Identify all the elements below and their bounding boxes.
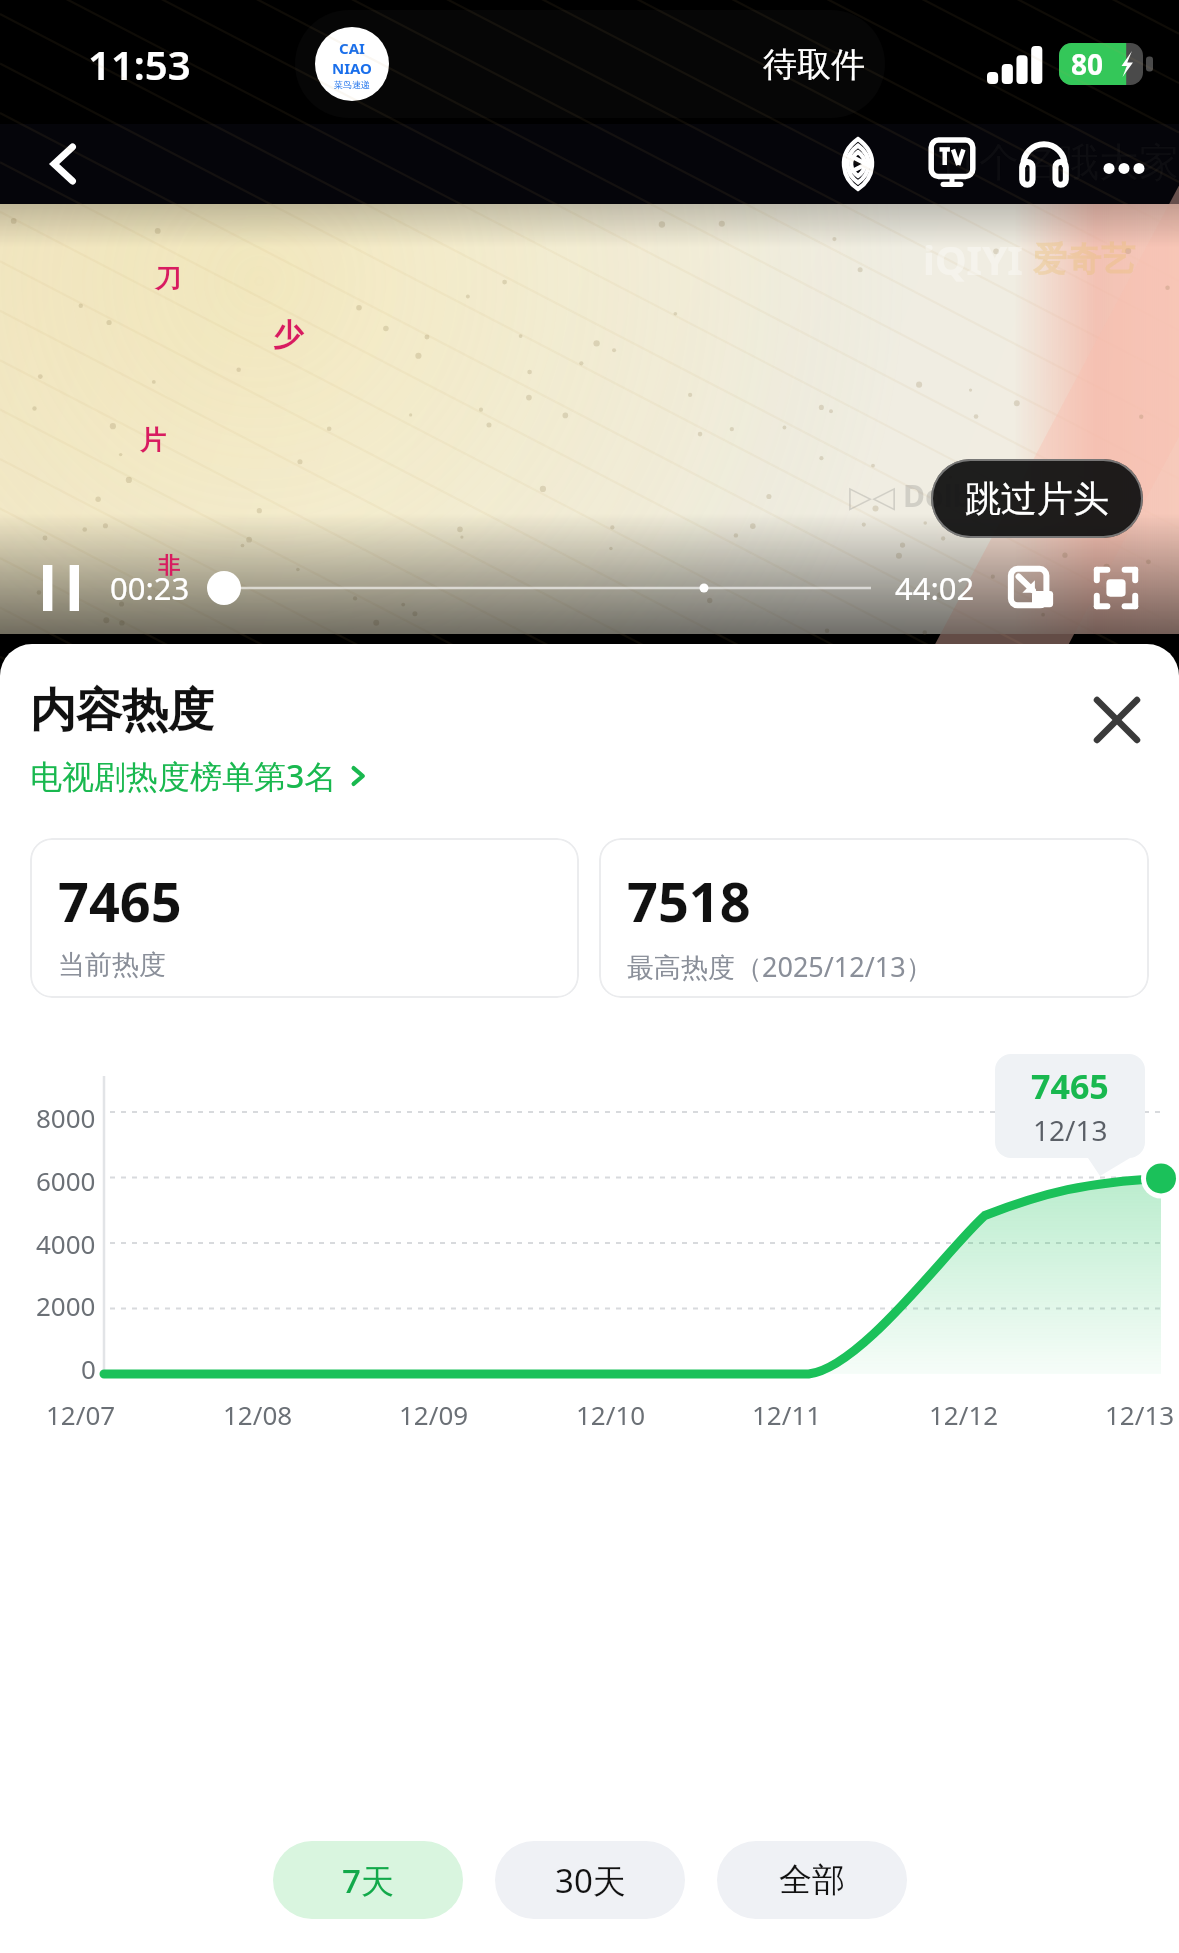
button[interactable]: Close — [1085, 688, 1149, 752]
button[interactable]: VIP — [821, 127, 895, 201]
staticText: 6000 — [36, 1163, 96, 1198]
button[interactable]: 全部 — [717, 1841, 907, 1919]
staticText: 30天 — [555, 1858, 626, 1903]
staticText: 0 — [81, 1351, 96, 1386]
button[interactable]: Cast to TV — [915, 127, 989, 201]
staticText: 7天 — [342, 1858, 394, 1903]
staticText: 跳过片头 — [965, 476, 1109, 521]
staticText: 2000 — [36, 1288, 96, 1323]
staticText: CAI — [339, 38, 365, 58]
staticText: 少 — [273, 316, 303, 354]
staticText: 12/07 — [46, 1397, 116, 1432]
button[interactable]: Picture in picture — [995, 551, 1069, 625]
staticText: 12/08 — [223, 1397, 293, 1432]
button[interactable]: More options — [1087, 127, 1161, 201]
staticText: 全部 — [779, 1859, 845, 1901]
staticText: 内容热度 — [30, 682, 214, 740]
staticText: ▷◁ Dolby — [849, 475, 989, 516]
staticText: 待取件 — [763, 43, 865, 86]
staticText: 非 — [158, 552, 180, 580]
button[interactable]: 跳过片头 — [931, 459, 1143, 538]
staticText: 打个名哦大家 — [939, 137, 1179, 187]
button[interactable]: Back — [36, 135, 94, 193]
staticText: 00:23 — [110, 567, 190, 609]
staticText: NIAO — [332, 58, 372, 78]
button[interactable]: 30天 — [495, 1841, 685, 1919]
button[interactable]: Audio only — [1007, 127, 1081, 201]
button[interactable]: 7518 — [599, 838, 1149, 998]
staticText: 12/09 — [399, 1397, 469, 1432]
staticText: 11:53 — [88, 37, 191, 91]
staticText: 80 — [1071, 45, 1104, 83]
staticText: 片 — [140, 424, 166, 457]
staticText: 菜鸟速递 — [334, 79, 370, 90]
staticText: 7465 — [58, 864, 182, 938]
staticText: 12/12 — [929, 1397, 999, 1432]
staticText: 8000 — [36, 1100, 96, 1135]
staticText: 12/10 — [576, 1397, 646, 1432]
staticText: 12/11 — [752, 1397, 822, 1432]
staticText: 当前热度 — [58, 948, 166, 982]
staticText: 44:02 — [895, 567, 975, 609]
staticText: 7518 — [627, 864, 751, 938]
button[interactable]: 电视剧热度榜单第3名 — [30, 754, 369, 798]
staticText: 7465 — [1031, 1063, 1109, 1109]
button[interactable]: Cainiao delivery status — [295, 10, 885, 118]
staticText: 12/13 — [1033, 1111, 1108, 1149]
button[interactable]: Pause — [34, 561, 88, 615]
button[interactable]: Fullscreen — [1079, 551, 1153, 625]
staticText: 刀 — [155, 262, 181, 295]
staticText: 4000 — [36, 1226, 96, 1261]
button[interactable]: 7465 — [30, 838, 579, 998]
staticText: 12/13 — [1105, 1397, 1175, 1432]
staticText: 爱奇艺 — [1033, 238, 1135, 281]
staticText: 电视剧热度榜单第3名 — [30, 754, 337, 798]
staticText: iQIYI — [923, 232, 1023, 286]
button[interactable]: 7天 — [273, 1841, 463, 1919]
staticText: 最高热度（2025/12/13） — [627, 948, 933, 985]
